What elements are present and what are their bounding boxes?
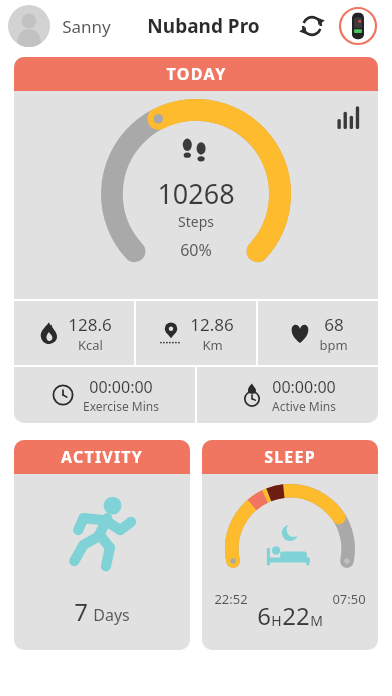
staticText: Kcal <box>78 336 103 354</box>
staticText: 68 <box>324 313 344 336</box>
staticText: 22 <box>282 599 310 632</box>
staticText: M <box>310 611 323 630</box>
button[interactable]: Device <box>338 6 378 46</box>
button[interactable]: TODAY <box>14 57 378 91</box>
staticText: 07:50 <box>332 590 366 608</box>
staticText: 60% <box>180 239 212 261</box>
staticText: Exercise Mins <box>83 398 159 414</box>
staticText: TODAY <box>166 63 227 85</box>
staticText: 12.86 <box>190 313 234 336</box>
staticText: ACTIVITY <box>61 446 143 468</box>
staticText: Sanny <box>62 15 111 38</box>
button[interactable]: 00:00:00 <box>197 367 378 423</box>
staticText: Days <box>93 604 130 626</box>
staticText: Steps <box>178 212 214 231</box>
staticText: SLEEP <box>264 446 316 468</box>
button[interactable]: 12.86 <box>136 301 256 365</box>
staticText: 128.6 <box>68 313 112 336</box>
button[interactable]: Profile <box>8 5 50 47</box>
button[interactable]: 00:00:00 <box>14 367 195 423</box>
staticText: Nuband Pro <box>147 13 260 39</box>
button[interactable]: Statistics <box>336 105 360 129</box>
staticText: 00:00:00 <box>272 376 336 398</box>
button[interactable]: SLEEP <box>202 440 378 650</box>
staticText: Active Mins <box>272 398 336 414</box>
staticText: H <box>271 611 282 630</box>
button[interactable]: Sync <box>296 10 328 42</box>
staticText: 10268 <box>157 175 235 212</box>
staticText: 22:52 <box>214 590 248 608</box>
staticText: 00:00:00 <box>89 376 153 398</box>
button[interactable]: 68 <box>258 301 378 365</box>
staticText: bpm <box>319 336 348 354</box>
staticText: 7 <box>74 595 88 628</box>
staticText: 6 <box>257 599 271 632</box>
button[interactable]: 128.6 <box>14 301 134 365</box>
button[interactable]: ACTIVITY <box>14 440 190 650</box>
staticText: Km <box>202 336 223 354</box>
